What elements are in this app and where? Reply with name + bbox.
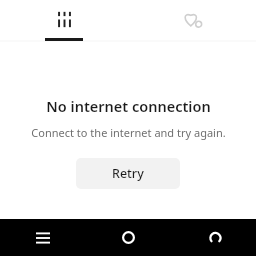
staticText: Connect to the internet and try again. bbox=[31, 125, 226, 140]
button[interactable]: Favorites bbox=[128, 0, 256, 42]
button[interactable]: Recent apps bbox=[0, 219, 86, 256]
button[interactable]: Retry bbox=[76, 158, 180, 189]
button[interactable]: Filters bbox=[0, 0, 128, 42]
staticText: No internet connection bbox=[46, 96, 211, 116]
button[interactable]: Home bbox=[86, 219, 171, 256]
button[interactable]: Back bbox=[171, 219, 256, 256]
staticText: Retry bbox=[112, 165, 144, 182]
